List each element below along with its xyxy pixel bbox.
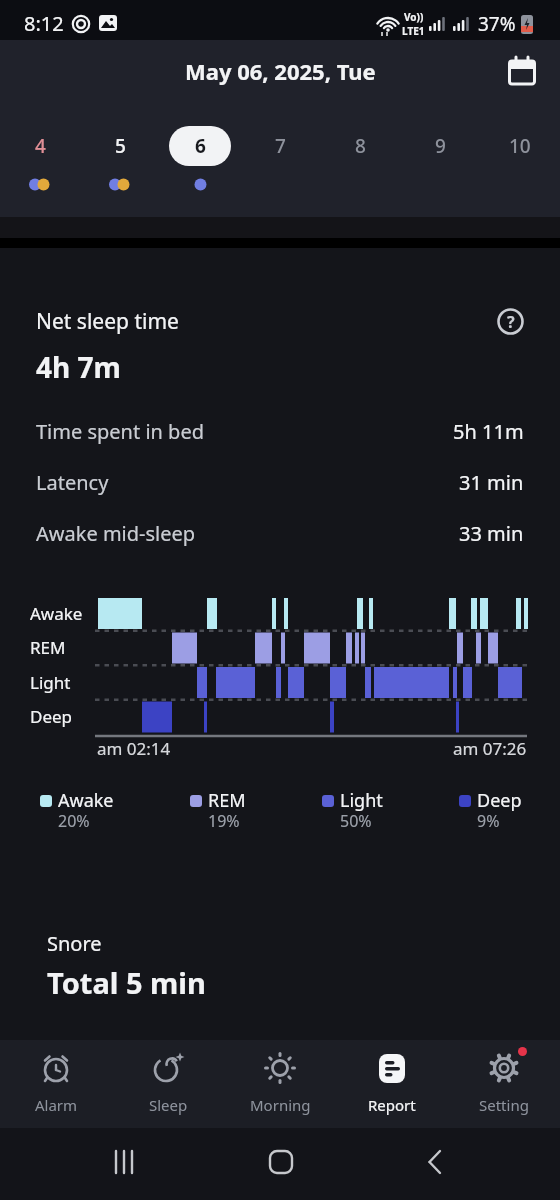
staticText: 8 — [355, 133, 366, 159]
staticText: 19% — [208, 810, 240, 832]
button[interactable]: 5 — [80, 102, 160, 208]
staticText: 9% — [477, 810, 500, 832]
staticText: Report — [368, 1095, 416, 1115]
staticText: Time spent in bed — [36, 418, 204, 445]
staticText: 4 — [35, 133, 46, 159]
button[interactable]: Morning — [224, 1040, 336, 1128]
staticText: Sleep — [149, 1095, 188, 1115]
button[interactable]: Setting — [448, 1040, 560, 1128]
staticText: REM — [30, 636, 66, 659]
staticText: Morning — [250, 1095, 311, 1115]
staticText: REM — [208, 788, 246, 813]
staticText: May 06, 2025, Tue — [185, 56, 376, 86]
staticText: Awake — [58, 788, 114, 813]
button[interactable]: 7 — [240, 102, 320, 208]
staticText: Deep — [477, 788, 522, 813]
staticText: 7 — [275, 133, 286, 159]
staticText: 6 — [195, 133, 206, 159]
staticText: 8:12 — [24, 10, 64, 37]
button[interactable]: 4 — [0, 102, 80, 208]
button[interactable]: 6 — [160, 102, 240, 208]
staticText: 5h 11m — [453, 418, 524, 445]
staticText: am 07:26 — [453, 737, 527, 760]
staticText: Setting — [479, 1095, 529, 1115]
staticText: Awake mid-sleep — [36, 520, 196, 547]
staticText: 33 min — [459, 520, 524, 547]
staticText: Snore — [47, 930, 102, 957]
staticText: Awake — [30, 602, 83, 625]
button[interactable]: Alarm — [0, 1040, 112, 1128]
staticText: Light — [30, 671, 71, 694]
staticText: Light — [340, 788, 383, 813]
staticText: 50% — [340, 810, 372, 832]
staticText: ? — [507, 311, 515, 333]
staticText: 4h 7m — [36, 348, 121, 386]
button[interactable]: 10 — [480, 102, 560, 208]
staticText: Deep — [30, 705, 73, 728]
staticText: Latency — [36, 469, 109, 496]
button[interactable] — [504, 53, 540, 89]
button[interactable]: Report — [336, 1040, 448, 1128]
staticText: am 02:14 — [97, 737, 171, 760]
staticText: 9 — [435, 133, 446, 159]
staticText: LTE1 — [402, 24, 425, 38]
staticText: Alarm — [35, 1095, 78, 1115]
staticText: 5 — [115, 133, 126, 159]
button[interactable]: 9 — [400, 102, 480, 208]
staticText: Vo)) — [404, 10, 424, 24]
staticText: Total 5 min — [47, 963, 206, 1002]
staticText: Net sleep time — [36, 307, 179, 336]
button[interactable]: Sleep — [112, 1040, 224, 1128]
staticText: 10 — [509, 133, 531, 159]
staticText: 31 min — [459, 469, 524, 496]
button[interactable]: ? — [497, 308, 524, 335]
button[interactable]: 8 — [320, 102, 400, 208]
staticText: 37% — [478, 11, 516, 37]
staticText: 20% — [58, 810, 90, 832]
